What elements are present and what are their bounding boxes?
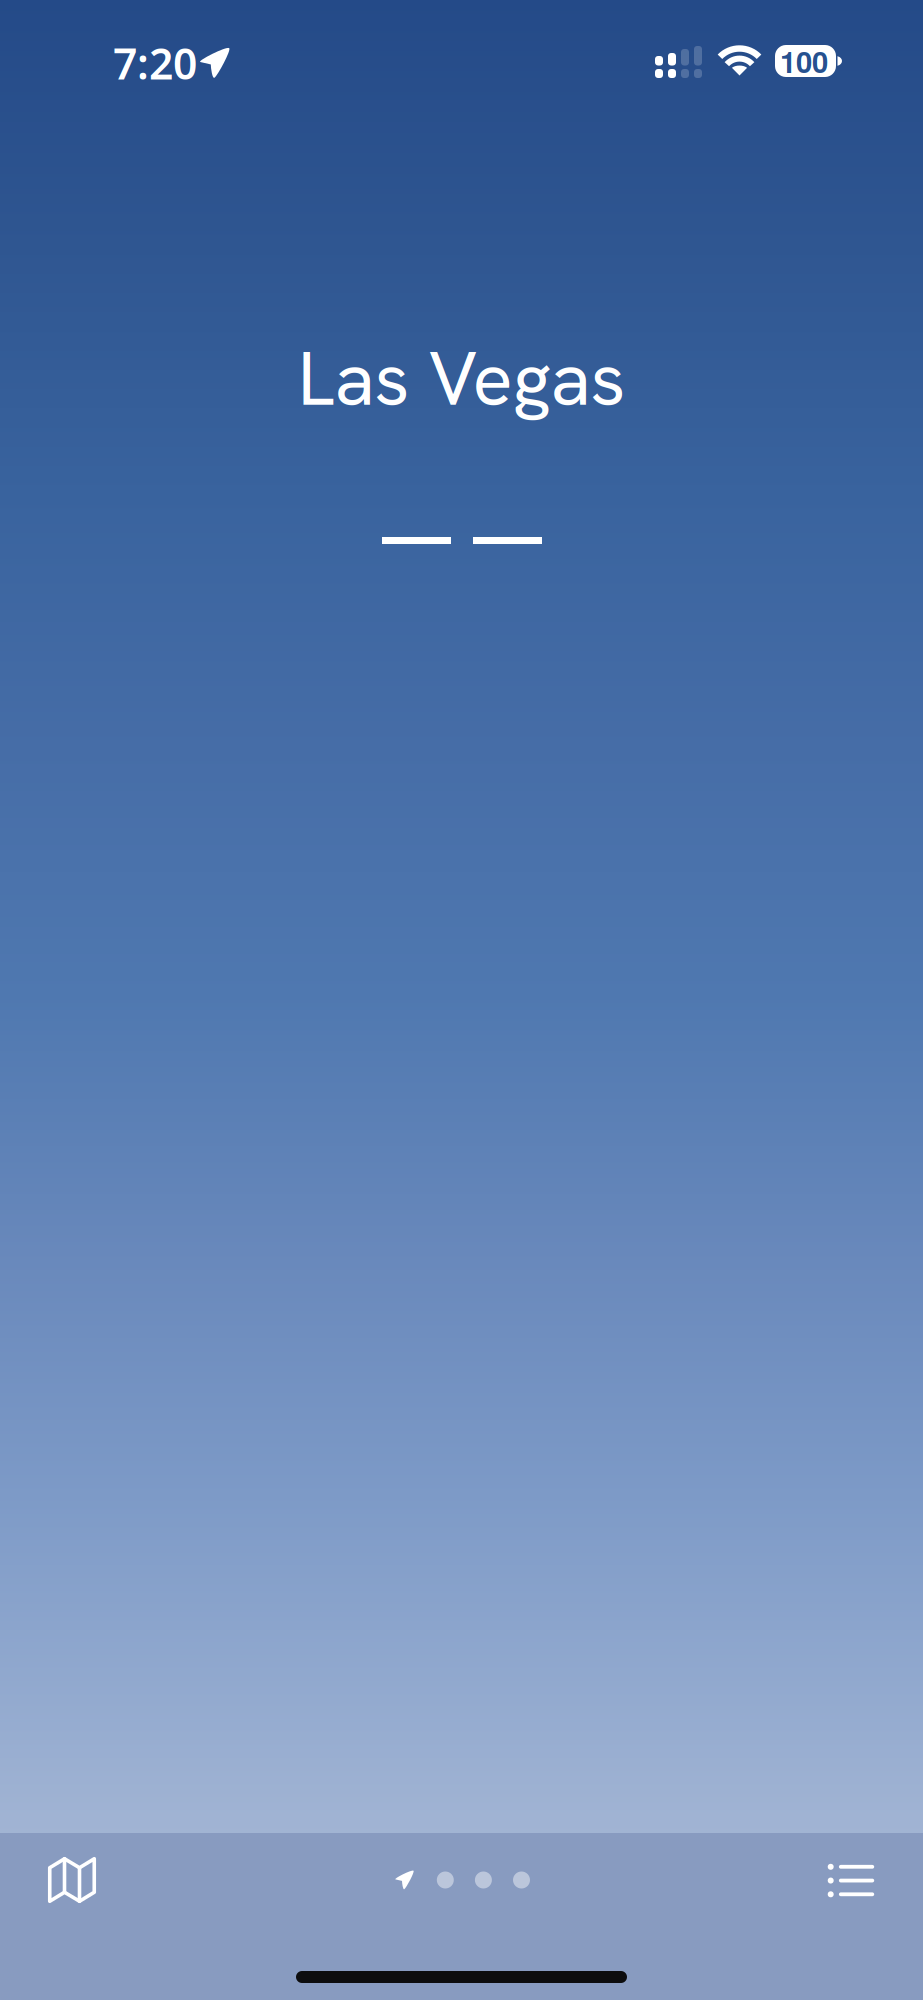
button[interactable]: Map xyxy=(21,1829,123,1931)
staticText: 7:20 xyxy=(113,34,197,92)
button[interactable]: Weather list xyxy=(802,1838,900,1923)
staticText: 100 xyxy=(780,40,828,82)
staticText: Las Vegas xyxy=(297,330,625,427)
